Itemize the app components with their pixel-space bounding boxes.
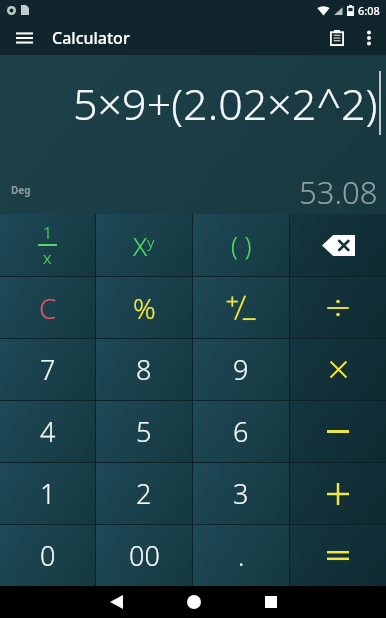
staticText: Xy (133, 228, 155, 263)
button[interactable]: Open navigation drawer (8, 22, 40, 54)
button[interactable]: Recent apps (232, 586, 309, 618)
button[interactable]: Equals (290, 525, 386, 586)
staticText: . (238, 538, 245, 573)
button[interactable]: More options (354, 23, 384, 53)
button[interactable]: Multiply (290, 339, 386, 400)
staticText: Deg (11, 183, 31, 197)
staticText: 6 (233, 413, 249, 450)
button[interactable]: History (320, 21, 354, 55)
button[interactable]: . (193, 525, 289, 586)
button[interactable]: Parentheses (193, 214, 289, 276)
staticText: 00 (129, 537, 160, 574)
staticText: 5 (136, 413, 152, 450)
staticText: 3 (233, 475, 249, 512)
button[interactable]: Plus minus sign (193, 277, 289, 338)
button[interactable]: 2 (96, 463, 192, 524)
staticText: C (39, 289, 57, 327)
button[interactable]: Subtract (290, 401, 386, 462)
button[interactable]: 7 (0, 339, 95, 400)
button[interactable]: 5 (96, 401, 192, 462)
staticText: Calculator (52, 27, 130, 49)
staticText: 53.08 (299, 171, 378, 213)
staticText: 0 (40, 537, 56, 574)
button[interactable]: 00 (96, 525, 192, 586)
staticText: 9 (233, 351, 249, 388)
button[interactable]: Back (78, 586, 155, 618)
button[interactable]: Add (290, 463, 386, 524)
button[interactable]: 3 (193, 463, 289, 524)
staticText: 6:08 (358, 3, 380, 18)
button[interactable]: 6 (193, 401, 289, 462)
button[interactable]: 4 (0, 401, 95, 462)
staticText: 8 (136, 351, 152, 388)
staticText: 5×9+(2.02×2^2) (73, 74, 378, 133)
button[interactable]: 9 (193, 339, 289, 400)
staticText: 1 (40, 475, 56, 512)
staticText: 1 (43, 222, 53, 244)
staticText: 4 (40, 413, 56, 450)
staticText: 7 (40, 351, 56, 388)
button[interactable]: Clear (0, 277, 95, 338)
button[interactable]: Backspace (290, 214, 386, 276)
staticText: x (43, 246, 52, 269)
staticText: ( ) (231, 228, 252, 262)
button[interactable]: One over x (0, 214, 95, 276)
button[interactable]: Percent (96, 277, 192, 338)
button[interactable]: Divide (290, 277, 386, 338)
button[interactable]: 1 (0, 463, 95, 524)
button[interactable]: 8 (96, 339, 192, 400)
button[interactable]: X to the power of y (96, 214, 192, 276)
staticText: % (133, 289, 156, 327)
staticText: 2 (136, 475, 152, 512)
button[interactable]: 0 (0, 525, 95, 586)
button[interactable]: Home (155, 586, 232, 618)
